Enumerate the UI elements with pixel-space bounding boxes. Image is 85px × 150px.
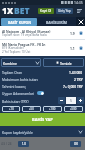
staticText: OK <box>74 142 78 146</box>
staticText: Mil Naria Pragua FK - FK In <box>2 42 46 46</box>
staticText: BET <box>14 5 30 17</box>
staticText: 1X <box>2 5 14 17</box>
button[interactable]: OK <box>70 141 81 147</box>
button[interactable]: BAHİS YAP <box>0 113 85 126</box>
button[interactable]: +100 <box>43 106 62 112</box>
staticText: Uygun Adaranamlari <box>2 91 35 95</box>
staticText: BASİT KUPON <box>8 20 31 25</box>
staticText: Kupon kaydet/yükle <box>2 130 33 134</box>
staticText: BAHİSLERİM <box>46 20 67 25</box>
staticText: 4.5 / 24 <box>1 142 12 146</box>
button[interactable]: 5 <box>66 97 76 104</box>
button[interactable]: Mil Naria Pragua FK - FK In <box>0 40 85 56</box>
button[interactable]: Kayıt Ol <box>38 8 54 14</box>
staticText: 5 <box>70 98 72 103</box>
staticText: 1.1 <box>70 46 75 50</box>
staticText: 1.9 <box>70 31 75 35</box>
button[interactable]: BAHİSLERİM <box>37 18 76 26</box>
button[interactable]: Kombine <box>1 58 41 67</box>
button[interactable]: +10 <box>2 106 20 112</box>
button[interactable]: Increase <box>77 97 84 104</box>
staticText: +500 <box>70 107 77 111</box>
staticText: 819 (Konsolide) <box>2 46 24 50</box>
button[interactable]: Remove selection <box>77 26 84 39</box>
staticText: Tahmini kazanç <box>2 84 26 88</box>
staticText: 1.0 <box>22 142 26 146</box>
staticText: Toplam Oran <box>2 70 23 74</box>
staticText: +50 <box>29 107 34 111</box>
button[interactable]: Toggle odds changes <box>37 91 44 95</box>
staticText: Giriş Yap <box>58 9 71 13</box>
staticText: Kombine <box>3 61 17 65</box>
button[interactable]: +500 <box>64 106 83 112</box>
staticText: Al Najoom - Al Khiyol (Kumar) <box>2 29 51 33</box>
button[interactable]: Giriş Yap <box>56 8 73 14</box>
staticText: 14:35 <box>74 0 83 5</box>
staticText: 1.43 000 <box>69 70 83 74</box>
button[interactable]: Menu <box>75 5 84 17</box>
button[interactable]: Temizle <box>43 58 84 67</box>
staticText: 2 Yol Toplam: 10 Üst <box>2 50 31 54</box>
button[interactable]: BASİT KUPON <box>1 18 37 26</box>
staticText: 7+ 0,000 TRY <box>63 84 83 88</box>
staticText: +10 <box>9 107 14 111</box>
button[interactable]: 1.0 <box>18 141 29 147</box>
staticText: Toplam skor: 19 veya daha fazla <box>2 33 47 37</box>
button[interactable]: Al Najoom - Al Khiyol (Kumar) <box>0 26 85 39</box>
staticText: Bahis tutarı (TRY) <box>2 99 29 103</box>
button[interactable]: Remove selection <box>77 40 84 56</box>
button[interactable]: Close <box>76 17 85 26</box>
staticText: 2 TRY <box>74 77 83 81</box>
button[interactable]: Decrease <box>58 97 65 104</box>
staticText: +100 <box>49 107 56 111</box>
staticText: Kayıt Ol <box>40 9 52 13</box>
button[interactable]: +50 <box>22 106 41 112</box>
staticText: Maksimum bahis tutarı <box>2 77 38 81</box>
staticText: BAHİS YAP <box>32 117 53 122</box>
button[interactable]: Kupon kaydet/yükle <box>0 126 85 137</box>
staticText: Temizle <box>60 61 72 65</box>
